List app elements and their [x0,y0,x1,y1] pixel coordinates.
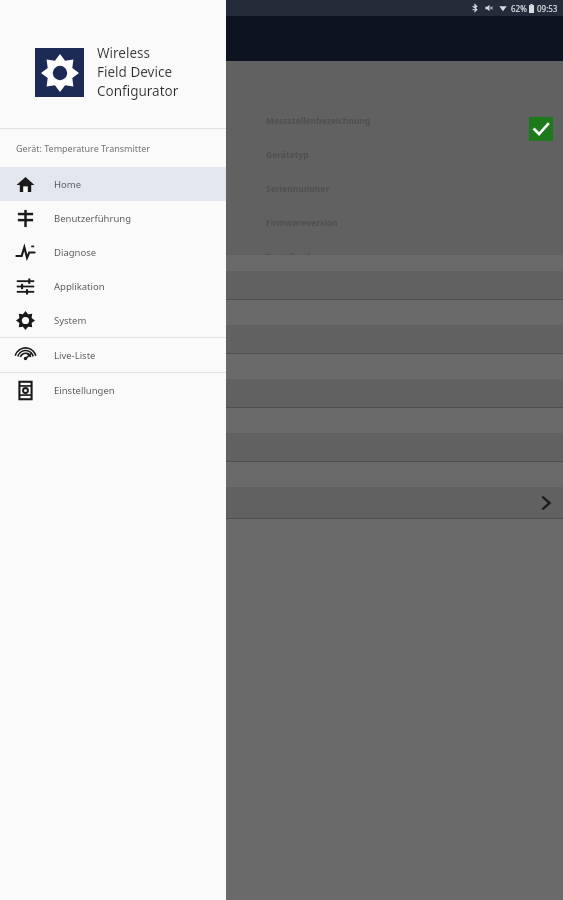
staticText: Benutzerführung [54,212,131,225]
staticText: 62% [511,3,527,14]
other: Weiter [537,494,555,512]
staticText: Live-Liste [54,349,96,362]
button[interactable]: System [0,303,226,337]
staticText: Bestellcode [266,251,315,255]
staticText: Messstellenbezeichnung [266,115,371,127]
button[interactable]: Applikation [0,269,226,303]
staticText: Home [54,178,82,191]
button[interactable] [0,325,563,353]
button[interactable]: Live-Liste [0,338,226,372]
button[interactable] [0,379,563,407]
staticText: Gerätetyp [266,149,309,161]
button[interactable]: Weiter [0,487,563,518]
button[interactable] [0,271,563,299]
staticText: Gerät: Temperature Transmitter [16,142,151,154]
button[interactable] [0,433,563,461]
staticText: 09:53 [537,3,558,14]
button[interactable]: Einstellungen [0,373,226,407]
staticText: Einstellungen [54,384,115,397]
button[interactable]: Home [0,167,226,201]
staticText: Seriennummer [266,183,330,195]
staticText: Firmwareversion [266,217,338,229]
staticText: Field Device [97,63,173,81]
staticText: Applikation [54,280,105,293]
button[interactable]: Diagnose [0,235,226,269]
staticText: System [54,314,87,327]
button[interactable]: Benutzerführung [0,201,226,235]
staticText: Diagnose [54,246,97,259]
staticText: Wireless [97,44,150,62]
button[interactable]: Geräte-Status OK [529,117,553,141]
staticText: Configurator [97,82,179,100]
